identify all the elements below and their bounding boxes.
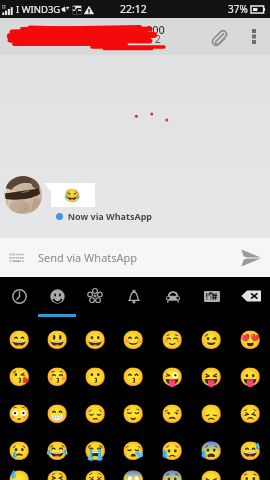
button[interactable]: 😒 [153,395,192,432]
staticText: 😢 [8,440,31,461]
staticText: ☺️ [161,329,184,350]
button[interactable]: 😌 [114,395,153,432]
button[interactable]: 😃 [38,321,76,358]
button[interactable]: 😀 [76,321,114,358]
button[interactable]: 😞 [192,395,231,432]
button[interactable]: 😭 [76,432,114,469]
button[interactable]: Smileys [38,277,76,315]
button[interactable]: 😪 [114,432,153,469]
button[interactable]: ☺️ [153,321,192,358]
staticText: 😵 [84,469,107,480]
staticText: 😣 [239,403,262,424]
button[interactable]: Back [0,18,20,55]
button[interactable]: Send [230,238,270,277]
staticText: 22:12 [120,2,147,16]
staticText: 😊 [122,329,145,350]
staticText: 37% [228,2,248,16]
button[interactable]: 😰 [192,432,231,469]
staticText: 😂 [64,188,81,203]
staticText: 😞 [200,403,223,424]
staticText: 😯 [239,469,262,480]
staticText: 😜 [161,366,184,387]
button[interactable]: 😉 [192,321,231,358]
button[interactable]: 😘 [0,358,38,395]
staticText: 😄 [8,329,31,350]
button[interactable]: Backspace [231,277,270,315]
staticText: Now via WhatsApp [63,210,153,222]
staticText: 😔 [84,403,107,424]
button[interactable]: 😗 [76,358,114,395]
button[interactable]: 😍 [231,321,270,358]
staticText: 😀 [84,329,107,350]
button[interactable]: 😛 [231,358,270,395]
button[interactable]: Objects [114,277,153,315]
button[interactable]: 😜 [153,358,192,395]
button[interactable]: 😥 [153,432,192,469]
button[interactable]: 😙 [114,358,153,395]
staticText: 😥 [161,440,184,461]
staticText: 😅 [239,440,262,461]
staticText: 😂 [46,440,69,461]
button[interactable]: 😂 [38,432,76,469]
button[interactable]: 😱 [114,469,153,480]
button[interactable]: 😁 [38,395,76,432]
button[interactable]: 😊 [114,321,153,358]
button[interactable]: 😣 [231,395,270,432]
staticText: 😳 [8,403,31,424]
staticText: 😌 [122,403,145,424]
button[interactable]: 😔 [76,395,114,432]
staticText: Send via WhatsApp [38,250,138,265]
button[interactable]: 😫 [38,469,76,480]
staticText: 😗 [84,366,107,387]
staticText: 😚 [46,366,69,387]
button[interactable]: Travel [153,277,192,315]
button[interactable]: Keyboard [0,238,32,277]
staticText: 😙 [122,366,145,387]
staticText: 0000 000 [118,22,165,37]
button[interactable]: Attach [200,18,238,55]
button[interactable]: 😄 [0,321,38,358]
button[interactable]: 😅 [231,432,270,469]
staticText: 😰 [200,440,223,461]
button[interactable]: 😯 [231,469,270,480]
staticText: 😨 [161,469,184,480]
staticText: 2 [155,32,161,46]
button[interactable]: Nature [76,277,114,315]
staticText: 😍 [239,329,262,350]
staticText: 😫 [46,469,69,480]
button[interactable]: 😵 [76,469,114,480]
staticText: 😭 [84,440,107,461]
staticText: 😁 [46,403,69,424]
staticText: 😪 [122,440,145,461]
button[interactable]: Symbols [192,277,231,315]
button[interactable]: 😨 [153,469,192,480]
button[interactable]: Recent [0,277,38,315]
staticText: 😖 [200,469,223,480]
staticText: I WIND3G [16,3,61,16]
button[interactable]: 😓 [0,469,38,480]
button[interactable]: 😚 [38,358,76,395]
staticText: 😛 [239,366,262,387]
button[interactable]: 😖 [192,469,231,480]
button[interactable]: 😳 [0,395,38,432]
staticText: 😱 [122,469,145,480]
button[interactable]: 😢 [0,432,38,469]
button[interactable]: More options [238,18,270,55]
staticText: 😘 [8,366,31,387]
staticText: 😃 [46,329,69,350]
staticText: 😒 [161,403,184,424]
button[interactable]: 😝 [192,358,231,395]
staticText: 😓 [8,469,31,480]
staticText: 😝 [200,366,223,387]
staticText: 😉 [200,329,223,350]
